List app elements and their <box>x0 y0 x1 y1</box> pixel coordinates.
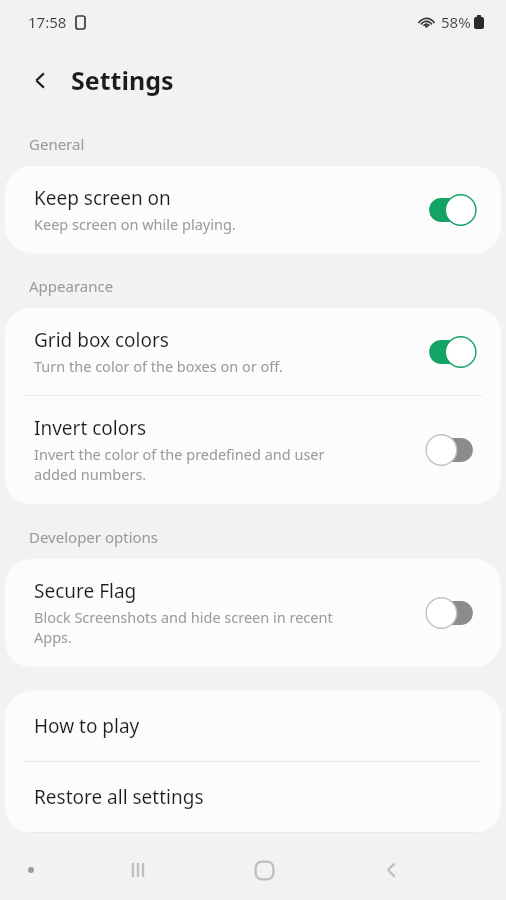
staticText: Settings <box>71 63 174 97</box>
button[interactable]: Recents <box>75 840 201 900</box>
staticText: Block Screenshots and hide screen in rec… <box>34 607 333 648</box>
other: Indicator <box>22 861 40 879</box>
button[interactable]: Off <box>425 596 477 630</box>
button[interactable]: Keep screen on <box>5 166 501 253</box>
staticText: Turn the color of the boxes on or off. <box>34 356 283 376</box>
staticText: Developer options <box>29 527 159 547</box>
button[interactable]: Back <box>328 840 455 900</box>
staticText: Invert colors <box>34 415 147 441</box>
staticText: How to play <box>34 713 140 739</box>
button[interactable]: On <box>425 335 477 369</box>
staticText: Restore all settings <box>34 784 204 810</box>
button[interactable]: Off <box>425 433 477 467</box>
button[interactable]: How to play <box>5 691 501 761</box>
staticText: 17:58 <box>28 12 67 32</box>
staticText: Invert the color of the predefined and u… <box>34 444 325 485</box>
button[interactable]: Secure Flag <box>5 559 501 667</box>
staticText: Grid box colors <box>34 327 169 353</box>
button[interactable]: Back <box>18 58 62 102</box>
staticText: Keep screen on while playing. <box>34 214 236 234</box>
button[interactable]: Restore all settings <box>5 762 501 832</box>
button[interactable]: Grid box colors <box>5 308 501 395</box>
button[interactable]: On <box>425 193 477 227</box>
staticText: Keep screen on <box>34 185 171 211</box>
button[interactable]: Home <box>201 840 328 900</box>
staticText: Appearance <box>29 276 114 296</box>
staticText: 58% <box>441 12 471 32</box>
staticText: Secure Flag <box>34 578 137 604</box>
button[interactable]: Invert colors <box>5 396 501 504</box>
staticText: General <box>29 134 85 154</box>
